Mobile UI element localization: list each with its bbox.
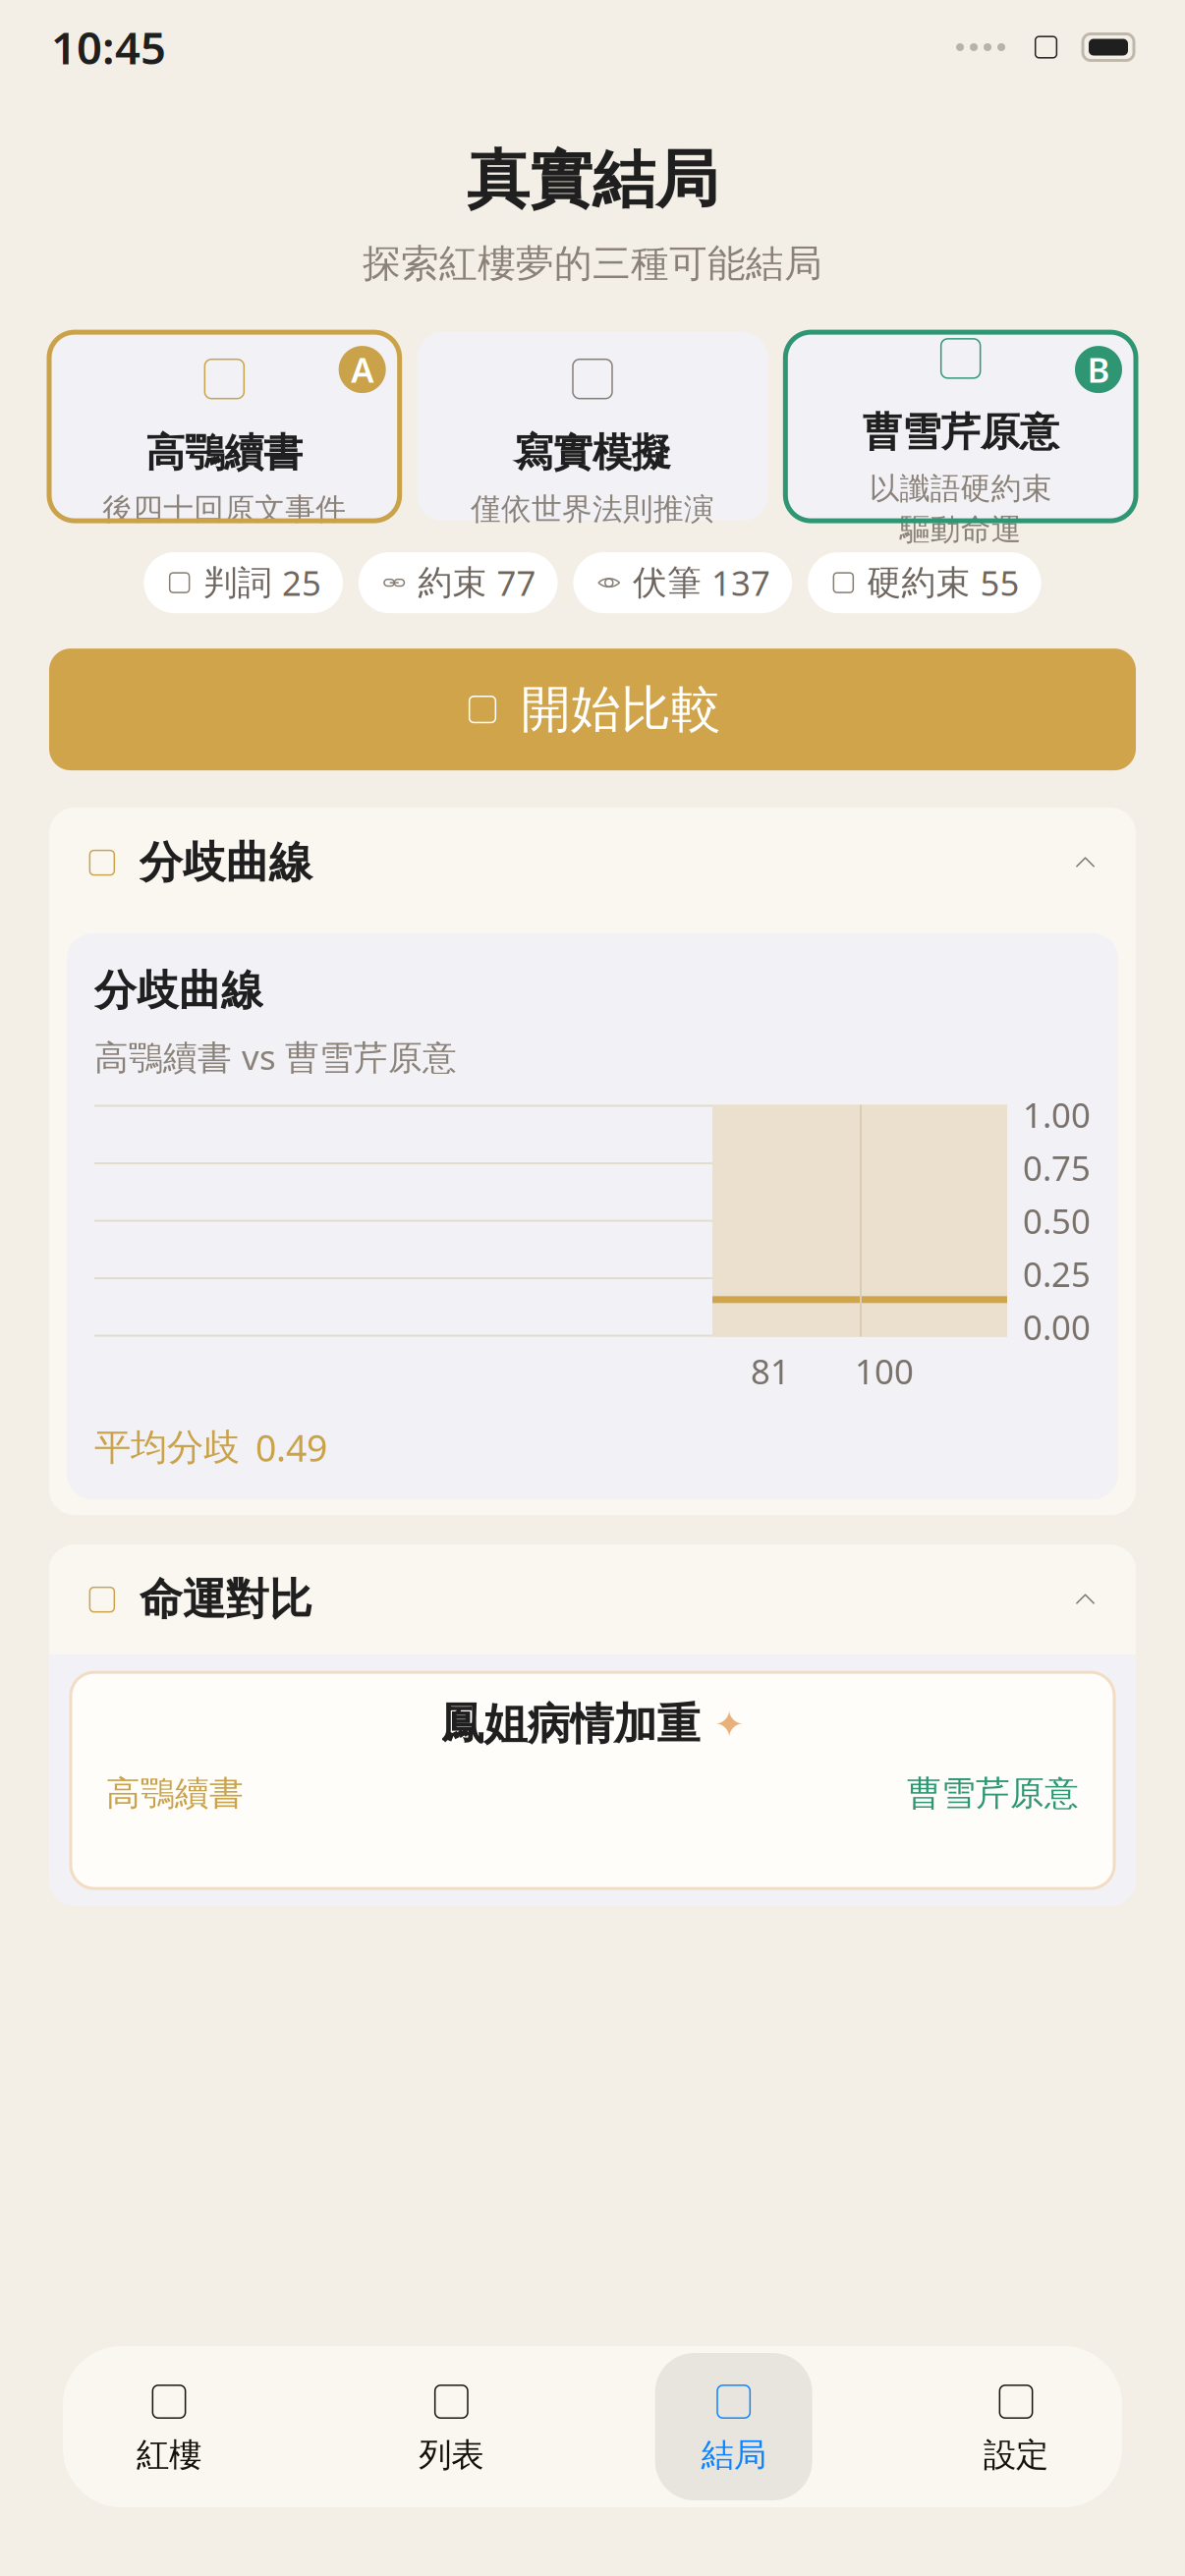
staticText: ✦: [714, 1704, 744, 1745]
staticText: 137: [711, 560, 770, 605]
staticText: 硬約束: [867, 562, 970, 604]
staticText: 平均分歧: [94, 1425, 240, 1470]
staticText: 分歧曲線: [139, 836, 312, 889]
staticText: 0.00: [1023, 1304, 1091, 1350]
button[interactable]: 曹雪芹原意: [785, 332, 1136, 521]
staticText: 0.49: [255, 1423, 327, 1472]
staticText: 僅依世界法則推演: [471, 491, 714, 528]
staticText: 判詞: [203, 562, 272, 604]
button[interactable]: 開始比較: [49, 649, 1136, 770]
button[interactable]: 列表: [373, 2353, 530, 2500]
staticText: 列表: [419, 2435, 484, 2475]
staticText: 25: [282, 560, 321, 605]
staticText: 1.00: [1023, 1092, 1091, 1137]
staticText: 高鶚續書 vs 曹雪芹原意: [94, 1034, 457, 1079]
staticText: B: [1087, 347, 1110, 392]
staticText: 探索紅樓夢的三種可能結局: [363, 240, 822, 287]
staticText: 開始比較: [521, 679, 721, 740]
staticText: 10:45: [51, 18, 166, 77]
staticText: 設定: [984, 2435, 1048, 2475]
staticText: 77: [497, 560, 536, 605]
staticText: 後四十回原文事件: [102, 491, 346, 528]
staticText: 結局: [701, 2435, 766, 2475]
staticText: 真實結局: [467, 141, 718, 219]
button[interactable]: 硬約束: [808, 552, 1041, 613]
staticText: 高鶚續書: [146, 429, 303, 477]
staticText: 寫實模擬: [514, 429, 671, 477]
button[interactable]: 高鶚續書: [49, 332, 400, 521]
staticText: 0.75: [1023, 1145, 1091, 1190]
staticText: 100: [855, 1348, 914, 1394]
staticText: 分歧曲線: [94, 965, 263, 1016]
button[interactable]: 伏筆: [573, 552, 792, 613]
staticText: 曹雪芹原意: [907, 1773, 1079, 1814]
button[interactable]: 命運對比: [49, 1545, 1136, 1655]
button[interactable]: 判詞: [144, 552, 343, 613]
staticText: 紅樓: [137, 2435, 201, 2475]
staticText: A: [351, 347, 374, 392]
staticText: 0.50: [1023, 1198, 1091, 1243]
button[interactable]: 設定: [937, 2353, 1095, 2500]
button[interactable]: 紅樓: [90, 2353, 248, 2500]
button[interactable]: 分歧曲線: [49, 808, 1136, 918]
button[interactable]: 結局: [655, 2353, 812, 2500]
staticText: 以讖語硬約束: [869, 470, 1052, 507]
staticText: 曹雪芹原意: [862, 408, 1059, 456]
staticText: 約束: [418, 562, 487, 604]
button[interactable]: 約束: [359, 552, 558, 613]
staticText: 驅動命運: [900, 511, 1022, 548]
button[interactable]: 寫實模擬: [417, 332, 768, 521]
staticText: 伏筆: [633, 562, 702, 604]
staticText: 55: [980, 560, 1020, 605]
staticText: 0.25: [1023, 1251, 1091, 1296]
staticText: 81: [751, 1348, 790, 1394]
staticText: 鳳姐病情加重: [441, 1698, 700, 1751]
staticText: 命運對比: [139, 1573, 312, 1626]
staticText: 高鶚續書: [106, 1773, 244, 1814]
